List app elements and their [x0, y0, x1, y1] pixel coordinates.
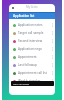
button[interactable]: More options	[49, 53, 55, 61]
button[interactable]: More options	[49, 45, 55, 53]
staticText: Appointment call list	[18, 71, 49, 75]
button[interactable]: Appointment	[9, 53, 55, 61]
button[interactable]: Target call sample	[9, 29, 55, 37]
button[interactable]: More options	[49, 21, 55, 29]
staticText: Second interview	[18, 39, 49, 43]
button[interactable]: Application list	[9, 13, 55, 19]
button[interactable]: More options	[49, 37, 55, 45]
button[interactable]: More options	[49, 77, 55, 85]
button[interactable]: Last followup	[9, 61, 55, 69]
button[interactable]: Second interview	[9, 37, 55, 45]
staticText: Application list	[13, 14, 35, 18]
button[interactable]: More options	[49, 69, 55, 77]
staticText: Application notes	[18, 23, 49, 27]
button[interactable]: Navigation menu	[11, 6, 15, 10]
button[interactable]: Application nego	[9, 45, 55, 53]
button[interactable]: Weekly standup	[9, 77, 55, 85]
button[interactable]: Application notes	[9, 21, 55, 29]
staticText: Last followup	[18, 63, 49, 67]
staticText: Application nego	[18, 47, 49, 51]
button[interactable]: More options	[49, 29, 55, 37]
button[interactable]: Appointment call list	[9, 69, 55, 77]
staticText: Weekly standup	[18, 79, 49, 83]
staticText: Item archived	[13, 82, 30, 85]
button[interactable]: Item archived	[11, 81, 54, 86]
button[interactable]: More options	[49, 61, 55, 69]
staticText: Target call sample	[18, 31, 49, 35]
staticText: Appointment	[18, 55, 49, 59]
staticText: My Lists	[26, 5, 38, 9]
